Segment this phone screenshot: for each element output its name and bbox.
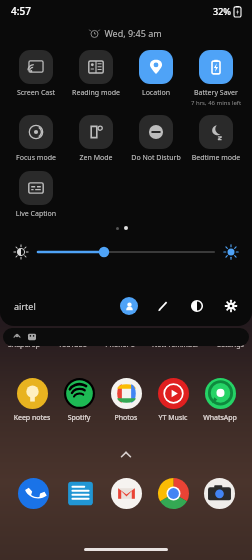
button[interactable]: Location	[126, 49, 186, 99]
staticText: 32%	[213, 5, 231, 17]
button[interactable]: Spotify	[57, 378, 101, 423]
staticText: Zen Mode	[66, 153, 126, 163]
button[interactable]: New reminder	[150, 340, 201, 350]
button[interactable]: YT Music	[151, 378, 195, 423]
staticText: 7 hrs, 46 mins left	[186, 99, 246, 107]
staticText: Bedtime mode	[186, 153, 246, 163]
button[interactable]: App	[202, 476, 236, 510]
button[interactable]: App	[63, 476, 97, 510]
button[interactable]: Power menu	[188, 297, 206, 315]
staticText: 4:57	[11, 4, 31, 18]
staticText: YouTube	[58, 340, 87, 350]
staticText: Location	[126, 88, 186, 98]
button[interactable]: App	[16, 476, 50, 510]
button[interactable]: Battery Saver	[186, 49, 246, 108]
button[interactable]: App	[156, 476, 190, 510]
staticText: Keep notes	[10, 413, 54, 423]
staticText: Live Caption	[6, 209, 66, 219]
button[interactable]: Reading mode	[66, 49, 126, 99]
button[interactable]: Zen Mode	[66, 114, 126, 164]
staticText: Battery Saver	[186, 88, 246, 98]
button[interactable]: Bedtime mode	[186, 114, 246, 164]
button[interactable]: Screen Cast	[6, 49, 66, 99]
staticText: Reading mode	[66, 88, 126, 98]
staticText: PhonePe	[105, 340, 135, 350]
button[interactable]: PhonePe	[103, 340, 137, 350]
button[interactable]: User account	[120, 297, 138, 315]
staticText: Screen Cast	[6, 88, 66, 98]
staticText: Spotify	[57, 413, 101, 423]
button[interactable]: YouTube	[56, 340, 89, 350]
staticText: Do Not Disturb	[126, 153, 186, 163]
staticText: Settings	[217, 340, 244, 350]
staticText: YT Music	[151, 413, 195, 423]
staticText: airtel	[14, 300, 36, 312]
button[interactable]: Snapdrop	[6, 340, 42, 350]
button[interactable]: Focus mode	[6, 114, 66, 164]
button[interactable]	[38, 242, 214, 262]
button[interactable]: WhatsApp	[198, 378, 242, 423]
button[interactable]	[3, 328, 249, 346]
button[interactable]: Settings	[222, 297, 240, 315]
staticText: Focus mode	[6, 153, 66, 163]
button[interactable]: Live Caption	[6, 170, 66, 220]
button[interactable]: airtel	[12, 300, 38, 312]
staticText: Photos	[104, 413, 148, 423]
button[interactable]: Do Not Disturb	[126, 114, 186, 164]
button[interactable]: App	[109, 476, 143, 510]
other: Open app drawer	[119, 451, 133, 458]
button[interactable]: Settings	[215, 340, 246, 350]
button[interactable]: Photos	[104, 378, 148, 423]
button[interactable]: Keep notes	[10, 378, 54, 423]
staticText: Snapdrop	[8, 340, 40, 350]
staticText: WhatsApp	[198, 413, 242, 423]
other: Low brightness	[14, 245, 28, 259]
other: Auto brightness	[224, 245, 238, 259]
staticText: Wed, 9:45 am	[104, 27, 162, 39]
staticText: New reminder	[152, 340, 199, 350]
button[interactable]: Edit tiles	[154, 297, 172, 315]
